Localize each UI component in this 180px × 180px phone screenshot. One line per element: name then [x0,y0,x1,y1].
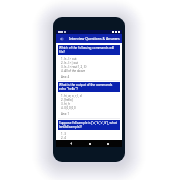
staticText: 3. ls -l >>out1, 2, 3) [61,65,87,69]
staticText: Ans: 1 [61,112,70,116]
staticText: Ans: 4 [61,75,70,79]
staticText: 4. 0,0,0,0,0 [61,106,76,110]
button[interactable]: Which of the following commands will cre… [56,45,122,82]
button[interactable]: Back [67,140,74,147]
staticText: 2. ls -l >| out [61,61,79,65]
staticText: 2. [hello] [61,98,73,102]
button[interactable]: What is the output of the commands [56,82,122,120]
staticText: 1. hi, w, o, r, l, d [61,94,82,98]
staticText: What is the output of the commands [59,83,113,87]
button[interactable]: Back [59,36,64,41]
staticText: Suppose fxExample is ['a','b','c','d'], … [59,121,119,125]
staticText: file? [59,50,65,54]
staticText: 3. hi, h [61,102,71,106]
staticText: len(fxExample)? [59,125,82,129]
staticText: 2. 4 [61,136,66,140]
button[interactable]: Suppose fxExample is ['a','b','c','d'], … [56,120,122,140]
staticText: 1. 3 [61,132,66,136]
button[interactable]: Home [86,140,93,147]
button[interactable]: Recents [104,140,111,147]
staticText: 1. ls -l > out [61,57,77,61]
staticText: Interview Questions & Answers [69,36,120,41]
staticText: echo "hello"? [59,87,78,91]
staticText: Which of the following commands will cre… [59,46,119,50]
staticText: 4. All of the above [61,69,86,73]
